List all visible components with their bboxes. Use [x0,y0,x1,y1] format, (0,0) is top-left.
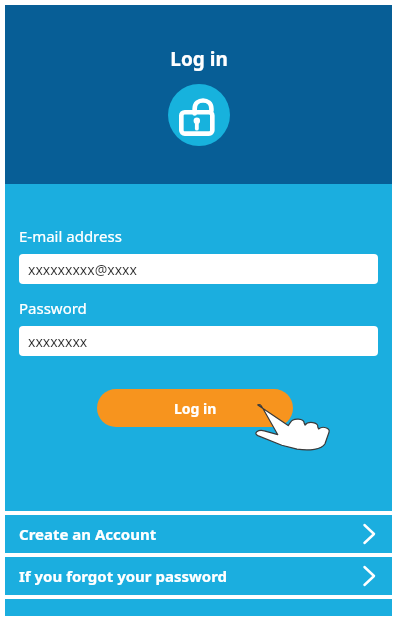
button[interactable]: Create an Account [5,515,392,553]
staticText: Log in [174,399,217,418]
button[interactable]: If you forgot your password [5,557,392,595]
button[interactable]: xxxxxxxx [19,326,378,356]
staticText: E-mail address [19,226,122,246]
other: Unlocked padlock [168,84,230,146]
staticText: Log in [170,46,228,72]
staticText: Password [19,298,87,318]
button[interactable]: xxxxxxxxx@xxxx [19,254,378,284]
button[interactable]: Log in [97,389,293,427]
staticText: If you forgot your password [19,566,363,586]
staticText: Create an Account [19,524,363,544]
staticText: xxxxxxxx [28,332,88,351]
staticText: xxxxxxxxx@xxxx [28,260,137,279]
